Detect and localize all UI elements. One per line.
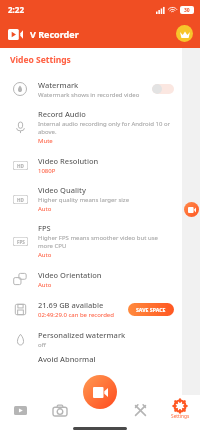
button[interactable]: Avoid Abnormal xyxy=(0,354,182,382)
staticText: Video Resolution xyxy=(38,156,99,166)
staticText: FPS xyxy=(38,223,51,233)
staticText: Avoid Abnormal xyxy=(38,354,96,364)
staticText: Watermark shows in recorded video xyxy=(38,91,140,99)
staticText: V Recorder xyxy=(30,28,79,40)
staticText: Video Settings xyxy=(10,54,71,66)
staticText: 2:22 xyxy=(8,4,24,15)
staticText: Record Audio xyxy=(38,109,86,119)
staticText: Video Orientation xyxy=(38,270,102,280)
button[interactable]: Videos xyxy=(0,395,40,425)
button[interactable]: Watermark toggle xyxy=(152,84,174,94)
staticText: 21.69 GB available xyxy=(38,300,104,310)
button[interactable]: Tools xyxy=(120,395,160,425)
staticText: Auto xyxy=(38,205,52,213)
button[interactable]: Record xyxy=(83,375,117,409)
staticText: Auto xyxy=(38,251,52,259)
button[interactable]: Settings xyxy=(160,395,200,425)
staticText: 1080P xyxy=(38,167,56,175)
staticText: 02:49:29.0 can be recorded xyxy=(38,311,114,319)
staticText: Personalized watermark xyxy=(38,330,126,340)
staticText: FPS xyxy=(17,239,25,245)
button[interactable]: HD xyxy=(0,180,182,218)
button[interactable]: Screenshots xyxy=(40,395,80,425)
staticText: HD xyxy=(17,163,24,169)
staticText: 30 xyxy=(184,7,190,14)
button[interactable]: Video Orientation xyxy=(0,264,182,294)
staticText: Higher quality means larger size xyxy=(38,196,130,204)
button[interactable]: 21.69 GB available xyxy=(0,294,182,324)
staticText: Mute xyxy=(38,137,53,145)
staticText: Internal audio recording only for Androi… xyxy=(38,120,174,136)
button[interactable]: Watermark xyxy=(0,74,182,104)
staticText: HD xyxy=(17,197,24,203)
button[interactable]: Record Audio xyxy=(0,104,182,150)
button[interactable]: Recorder floating button xyxy=(184,202,199,217)
staticText: Settings xyxy=(171,413,190,420)
staticText: Auto xyxy=(38,281,52,289)
button[interactable]: Premium xyxy=(176,25,193,42)
staticText: Watermark xyxy=(38,80,79,90)
staticText: SAVE SPACE xyxy=(136,306,166,313)
button[interactable]: SAVE SPACE xyxy=(128,303,174,316)
staticText: Video Quality xyxy=(38,185,86,195)
button[interactable]: Personalized watermark xyxy=(0,324,182,354)
button[interactable]: FPS xyxy=(0,218,182,264)
staticText: off xyxy=(38,341,46,349)
button[interactable]: HD xyxy=(0,150,182,180)
staticText: Higher FPS means smoother video but use … xyxy=(38,234,174,250)
